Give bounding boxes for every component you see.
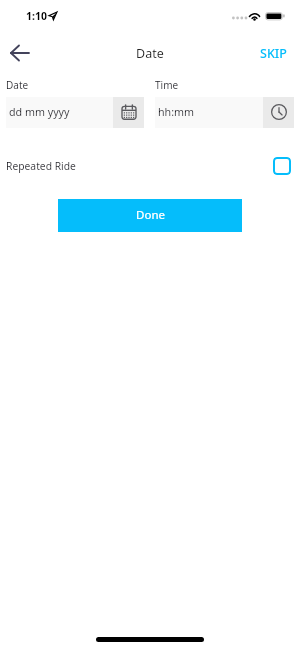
staticText: Date — [6, 78, 29, 92]
staticText: Date — [136, 45, 164, 62]
staticText: dd mm yyyy — [9, 105, 113, 120]
staticText: Time — [155, 78, 179, 92]
button[interactable]: dd mm yyyy — [6, 97, 144, 128]
button[interactable]: hh:mm — [155, 97, 294, 128]
staticText: Done — [136, 207, 165, 223]
staticText: Repeated Ride — [6, 159, 273, 173]
button[interactable]: Repeated Ride — [0, 157, 300, 175]
staticText: SKIP — [260, 45, 287, 62]
staticText: hh:mm — [158, 105, 263, 120]
button[interactable]: Repeated Ride checkbox — [273, 157, 291, 175]
button[interactable]: SKIP — [250, 39, 300, 68]
button[interactable]: Back — [3, 36, 37, 70]
button[interactable]: Done — [58, 199, 242, 232]
staticText: 1:10 — [26, 9, 47, 23]
